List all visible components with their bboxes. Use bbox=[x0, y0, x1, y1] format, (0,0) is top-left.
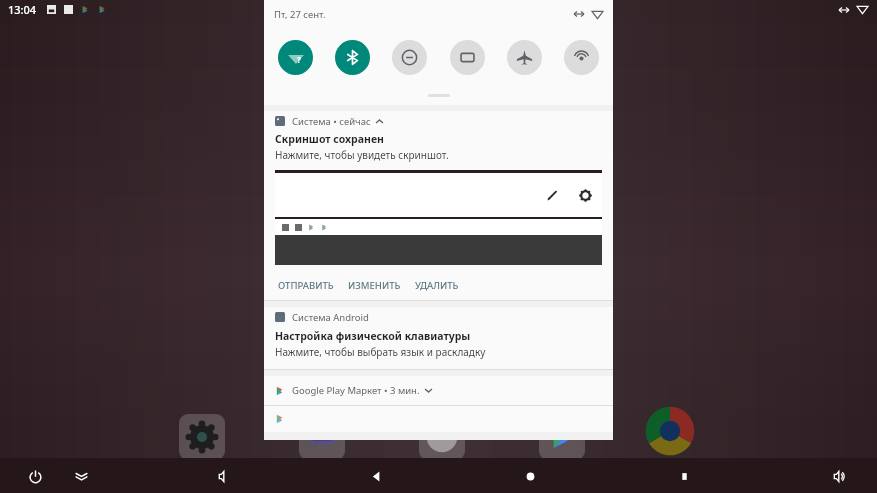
button[interactable]: Система Android bbox=[275, 307, 613, 327]
staticText: Настройка физической клавиатуры bbox=[275, 329, 471, 343]
button[interactable]: Recents bbox=[667, 459, 701, 493]
staticText: Нажмите, чтобы увидеть скриншот. bbox=[275, 148, 449, 162]
staticText: УДАЛИТЬ bbox=[415, 279, 459, 292]
button[interactable]: Screenshot preview bbox=[275, 170, 602, 265]
button[interactable]: Volume up bbox=[821, 459, 855, 493]
button[interactable]: Bluetooth bbox=[335, 40, 370, 75]
button[interactable]: ИЗМЕНИТЬ bbox=[345, 275, 404, 296]
button[interactable]: Volume down bbox=[206, 459, 240, 493]
staticText: ОТПРАВИТЬ bbox=[278, 279, 334, 292]
staticText: Google Play Маркет • 3 мин. bbox=[292, 384, 420, 397]
button[interactable]: App bbox=[299, 414, 345, 460]
button[interactable]: Система • сейчас bbox=[275, 111, 613, 131]
button[interactable]: Power bbox=[18, 459, 52, 493]
staticText: 13:04 bbox=[8, 2, 37, 17]
button[interactable]: Home bbox=[513, 459, 547, 493]
button[interactable]: Airplane mode bbox=[507, 40, 542, 75]
button[interactable]: Hotspot bbox=[564, 40, 599, 75]
staticText: ? bbox=[297, 54, 301, 65]
button[interactable]: Do not disturb bbox=[392, 40, 427, 75]
button[interactable]: App bbox=[419, 414, 465, 460]
button[interactable]: Chrome bbox=[641, 402, 699, 460]
staticText: Скриншот сохранен bbox=[275, 132, 384, 146]
button[interactable]: Screen bbox=[450, 40, 485, 75]
staticText: Система Android bbox=[292, 311, 369, 324]
button[interactable]: Google Play Маркет • 3 мин. bbox=[275, 376, 613, 405]
button[interactable]: App bbox=[539, 414, 585, 460]
button[interactable]: Collapse bbox=[64, 459, 98, 493]
button[interactable]: Back bbox=[359, 459, 393, 493]
staticText: Нажмите, чтобы выбрать язык и раскладку bbox=[275, 345, 486, 359]
staticText: ИЗМЕНИТЬ bbox=[348, 279, 401, 292]
staticText: Пт, 27 сент. bbox=[274, 8, 326, 21]
staticText: Система • сейчас bbox=[292, 115, 371, 128]
button[interactable]: Wi-Fi bbox=[278, 40, 313, 75]
button[interactable]: ОТПРАВИТЬ bbox=[275, 275, 337, 296]
button[interactable]: УДАЛИТЬ bbox=[412, 275, 462, 296]
button[interactable]: App bbox=[179, 414, 225, 460]
